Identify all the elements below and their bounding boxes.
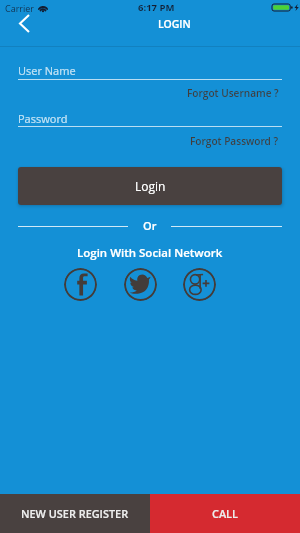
staticText: Forgot Password ?: [190, 134, 279, 148]
staticText: Or: [143, 218, 157, 233]
staticText: CALL: [212, 506, 238, 521]
button[interactable]: Forgot Password ?: [190, 134, 279, 148]
button[interactable]: Facebook: [64, 268, 97, 301]
staticText: NEW USER REGISTER: [21, 506, 129, 521]
button[interactable]: Login: [18, 167, 282, 205]
staticText: Carrier: [5, 2, 35, 14]
staticText: 6:17 PM: [138, 1, 175, 14]
button[interactable]: Google Plus: [183, 268, 216, 301]
button[interactable]: NEW USER REGISTER: [0, 494, 150, 533]
staticText: LOGIN: [158, 17, 191, 31]
button[interactable]: CALL: [150, 494, 300, 533]
button[interactable]: Twitter: [124, 268, 157, 301]
staticText: User Name: [18, 63, 76, 78]
staticText: Login: [135, 178, 166, 194]
staticText: Forgot Username ?: [187, 86, 279, 100]
button[interactable]: Back: [7, 9, 41, 38]
staticText: Password: [18, 111, 68, 126]
button[interactable]: Forgot Username ?: [187, 86, 279, 100]
staticText: Login With Social Network: [77, 245, 223, 261]
